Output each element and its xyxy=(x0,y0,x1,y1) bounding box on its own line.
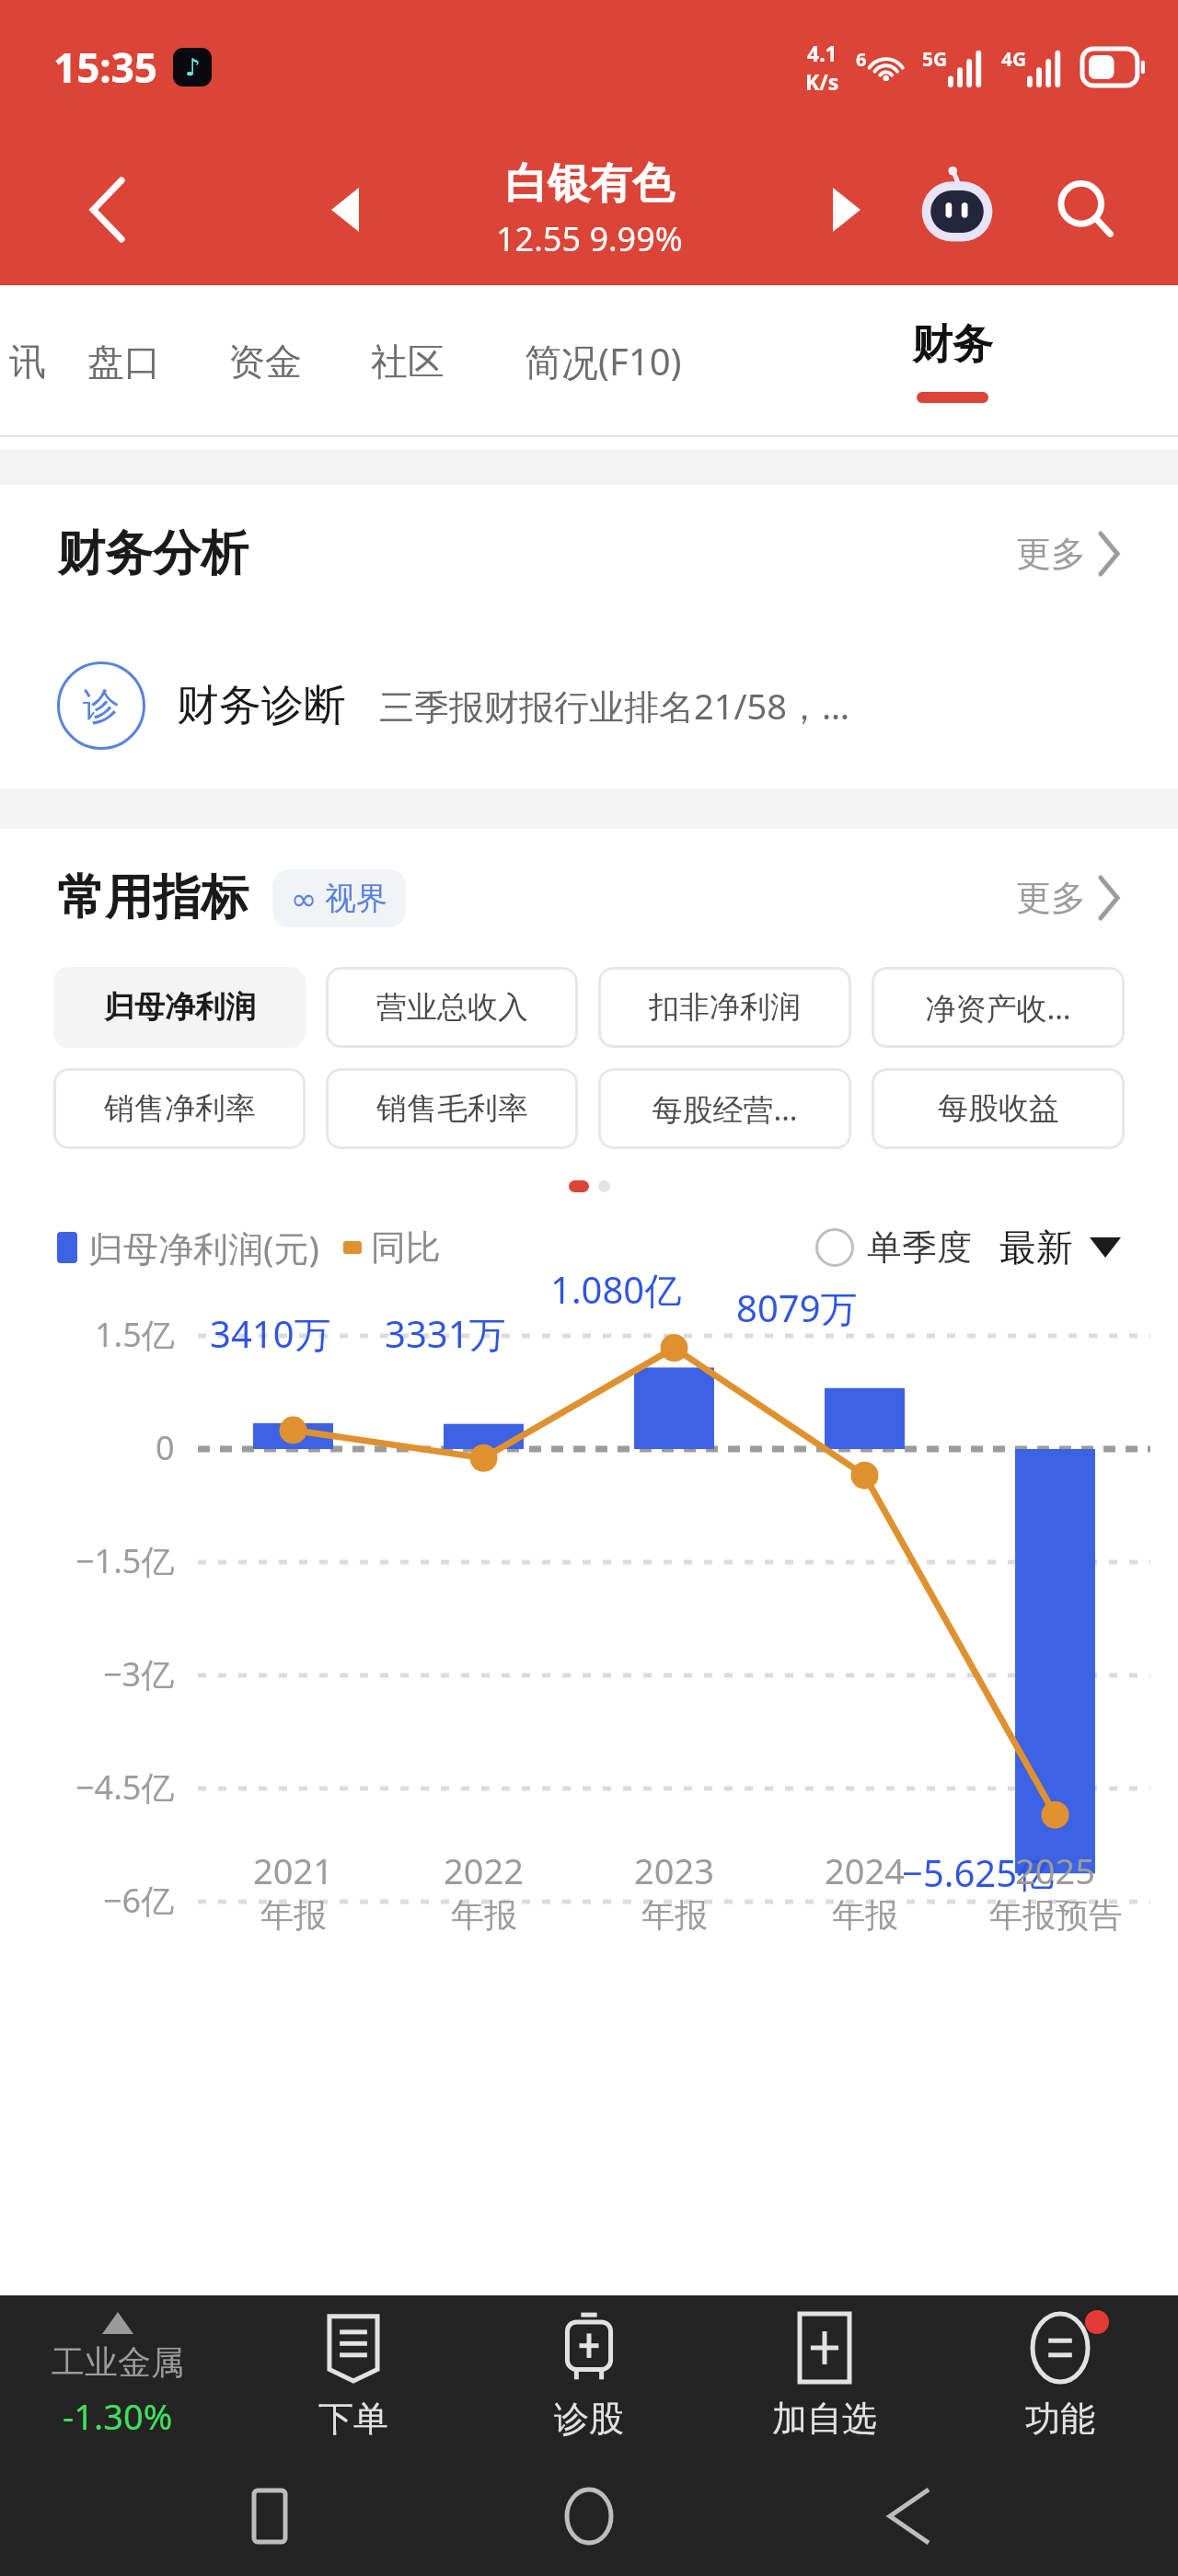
staticText: 年报 xyxy=(641,1894,708,1936)
staticText: 讯 xyxy=(9,339,46,385)
staticText: 加自选 xyxy=(772,2397,877,2441)
button[interactable]: Previous stock xyxy=(304,168,387,251)
button[interactable]: Back xyxy=(859,2466,960,2567)
staticText: K/s xyxy=(805,67,839,96)
staticText: 简况(F10) xyxy=(525,336,682,386)
button[interactable]: 加自选 xyxy=(707,2295,942,2456)
staticText: ♪ xyxy=(185,53,201,81)
button[interactable]: Search xyxy=(1040,164,1132,256)
staticText: −6亿 xyxy=(103,1878,175,1923)
staticText: 更多 xyxy=(1016,876,1086,920)
staticText: 3331万 xyxy=(385,1308,506,1359)
staticText: 财务分析 xyxy=(57,523,248,584)
staticText: 15:35 xyxy=(53,40,158,95)
button[interactable]: Recents xyxy=(219,2466,320,2567)
button[interactable]: 工业金属 xyxy=(0,2295,236,2456)
staticText: 诊股 xyxy=(554,2397,624,2441)
staticText: 常用指标 xyxy=(57,868,248,928)
button[interactable]: 社区 xyxy=(336,285,479,437)
staticText: 12.55 9.99% xyxy=(496,216,683,261)
staticText: 归母净利润(元) xyxy=(88,1224,319,1271)
staticText: 销售净利率 xyxy=(104,1089,256,1128)
button[interactable]: 简况(F10) xyxy=(479,285,727,437)
staticText: 年报 xyxy=(451,1894,517,1936)
button[interactable]: 下单 xyxy=(236,2295,471,2456)
staticText: 三季报财报行业排名21/58，… xyxy=(379,682,850,730)
staticText: 年报 xyxy=(832,1894,898,1936)
staticText: 6 xyxy=(856,47,867,72)
staticText: 社区 xyxy=(371,339,445,385)
staticText: 功能 xyxy=(1025,2397,1095,2441)
staticText: 2023 xyxy=(634,1846,714,1894)
staticText: 更多 xyxy=(1016,532,1086,576)
staticText: −4.5亿 xyxy=(75,1765,175,1810)
button[interactable]: 诊 xyxy=(0,623,1178,788)
button[interactable]: 最新 xyxy=(999,1225,1121,1271)
staticText: 最新 xyxy=(999,1225,1073,1271)
button[interactable]: 财务分析 xyxy=(0,485,1178,623)
staticText: 销售毛利率 xyxy=(376,1089,528,1128)
button[interactable]: 财务 xyxy=(727,285,1178,437)
staticText: -1.30% xyxy=(63,2392,173,2440)
staticText: 下单 xyxy=(318,2397,388,2441)
button[interactable]: 白银有色 xyxy=(496,157,683,261)
staticText: 财务诊断 xyxy=(177,679,346,732)
staticText: 4G xyxy=(1001,46,1027,73)
staticText: 每股经营… xyxy=(652,1088,798,1130)
staticText: 2021 xyxy=(253,1846,333,1894)
button[interactable]: 净资产收… xyxy=(872,967,1125,1048)
staticText: 诊 xyxy=(83,683,120,729)
button[interactable]: 讯 xyxy=(0,285,55,437)
button[interactable]: 每股经营… xyxy=(598,1068,851,1149)
staticText: 1.5亿 xyxy=(95,1312,175,1357)
staticText: 年报预告 xyxy=(989,1894,1122,1936)
staticText: 8079万 xyxy=(736,1282,858,1333)
staticText: 年报 xyxy=(260,1894,327,1936)
button[interactable]: ∞ xyxy=(272,869,406,927)
staticText: −1.5亿 xyxy=(75,1538,175,1583)
button[interactable]: 销售毛利率 xyxy=(326,1068,578,1149)
staticText: 5G xyxy=(922,46,948,73)
button[interactable]: 盘口 xyxy=(55,285,193,437)
staticText: 同比 xyxy=(371,1225,441,1270)
button[interactable]: 诊股 xyxy=(471,2295,707,2456)
staticText: 视界 xyxy=(325,879,387,918)
button[interactable]: 功能 xyxy=(942,2295,1178,2456)
staticText: ∞ xyxy=(291,880,318,917)
button[interactable]: 单季度 xyxy=(815,1225,972,1270)
staticText: 财务 xyxy=(912,319,993,370)
staticText: 扣非净利润 xyxy=(649,988,801,1027)
staticText: −3亿 xyxy=(103,1651,175,1696)
staticText: 2024 xyxy=(825,1846,905,1894)
staticText: 1.080亿 xyxy=(550,1264,682,1315)
staticText: 2025 xyxy=(1015,1846,1095,1894)
staticText: 2022 xyxy=(444,1846,524,1894)
staticText: 单季度 xyxy=(867,1225,972,1270)
button[interactable]: 销售净利率 xyxy=(53,1068,306,1149)
staticText: 净资产收… xyxy=(925,987,1071,1029)
staticText: 3410万 xyxy=(210,1308,331,1359)
button[interactable]: 资金 xyxy=(193,285,336,437)
staticText: 归母净利润 xyxy=(104,988,256,1027)
staticText: −5.625亿 xyxy=(902,1847,1055,1898)
staticText: 每股收益 xyxy=(938,1089,1059,1128)
button[interactable]: AI assistant xyxy=(907,159,1008,260)
staticText: 白银有色 xyxy=(505,157,675,211)
button[interactable]: 归母净利润 xyxy=(53,967,306,1048)
staticText: 4.1 xyxy=(807,39,837,67)
button[interactable]: Next stock xyxy=(805,168,888,251)
staticText: 工业金属 xyxy=(52,2341,184,2383)
button[interactable]: 每股收益 xyxy=(872,1068,1125,1149)
staticText: 盘口 xyxy=(87,339,161,385)
staticText: 0 xyxy=(156,1425,175,1470)
button[interactable]: Back xyxy=(64,166,153,254)
button[interactable]: 更多 xyxy=(1016,876,1121,920)
staticText: 资金 xyxy=(228,339,302,385)
button[interactable]: 扣非净利润 xyxy=(598,967,851,1048)
button[interactable]: Home xyxy=(538,2466,640,2567)
staticText: 营业总收入 xyxy=(376,988,528,1027)
button[interactable]: 营业总收入 xyxy=(326,967,578,1048)
